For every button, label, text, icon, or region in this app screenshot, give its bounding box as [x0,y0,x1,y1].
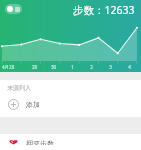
staticText: 2 [82,64,101,70]
button[interactable]: Toggle view [5,4,22,14]
staticText: 1 [63,64,82,70]
button[interactable]: 拥趸步数 [0,134,141,150]
staticText: 4 [120,64,139,70]
staticText: 3 [101,64,120,70]
staticText: 步数：12633 [73,3,135,17]
button[interactable]: 添加 [0,95,141,117]
staticText: 拥趸步数 [26,139,54,145]
staticText: 4月28 [2,64,25,70]
staticText: 30 [44,64,63,70]
staticText: 来源列入 [7,84,31,92]
staticText: 添加 [26,100,40,109]
staticText: 29 [25,64,44,70]
